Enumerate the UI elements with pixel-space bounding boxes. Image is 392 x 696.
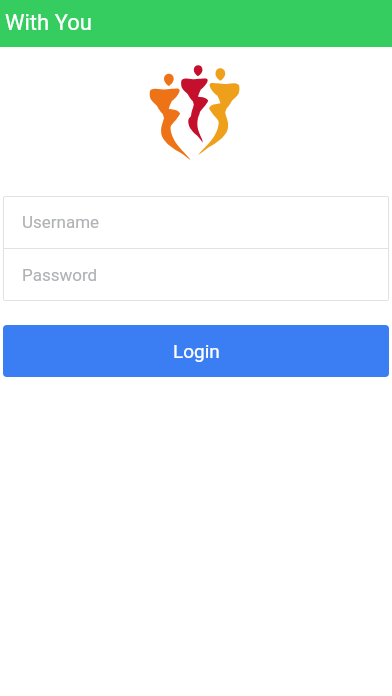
staticText: Password bbox=[22, 265, 98, 285]
button[interactable]: Login bbox=[3, 325, 389, 377]
staticText: With You bbox=[5, 10, 92, 36]
button[interactable]: With You bbox=[0, 0, 392, 47]
staticText: Login bbox=[173, 340, 220, 362]
button[interactable]: Password bbox=[3, 249, 389, 301]
button[interactable]: Username bbox=[3, 196, 389, 248]
staticText: Username bbox=[22, 212, 100, 232]
